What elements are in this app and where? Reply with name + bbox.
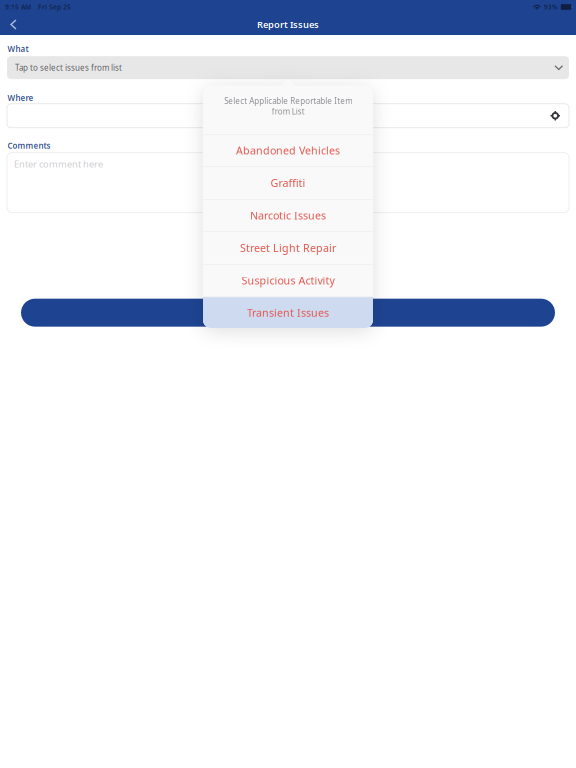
staticText: Abandoned Vehicles xyxy=(236,143,340,158)
button[interactable]: Use current location xyxy=(550,111,560,120)
staticText: What xyxy=(7,43,28,54)
button[interactable]: Narcotic Issues xyxy=(203,200,373,231)
staticText: 9:15 AM xyxy=(5,3,31,11)
staticText: Enter comment here xyxy=(14,158,103,170)
staticText: Street Light Repair xyxy=(240,241,336,255)
staticText: Tap to select issues from list xyxy=(15,62,122,73)
staticText: 93% xyxy=(544,3,558,11)
staticText: Comments xyxy=(7,140,50,151)
staticText: Where xyxy=(7,93,33,103)
button[interactable]: Street Light Repair xyxy=(203,232,373,264)
staticText: Transient Issues xyxy=(247,305,329,320)
button[interactable]: Graffiti xyxy=(203,167,373,199)
staticText: Narcotic Issues xyxy=(250,208,326,223)
staticText: Select Applicable Reportable Item from L… xyxy=(224,95,352,117)
button[interactable] xyxy=(21,299,555,327)
staticText: Graffiti xyxy=(270,176,305,190)
button[interactable]: Transient Issues xyxy=(203,297,373,328)
staticText: Fri Sep 25 xyxy=(38,3,71,11)
button[interactable]: Abandoned Vehicles xyxy=(203,135,373,166)
staticText: Report Issues xyxy=(257,18,319,31)
button[interactable]: Tap to select issues from list xyxy=(7,56,569,79)
staticText: Suspicious Activity xyxy=(241,273,334,288)
button[interactable]: Suspicious Activity xyxy=(203,265,373,296)
button[interactable]: Back xyxy=(0,14,37,35)
